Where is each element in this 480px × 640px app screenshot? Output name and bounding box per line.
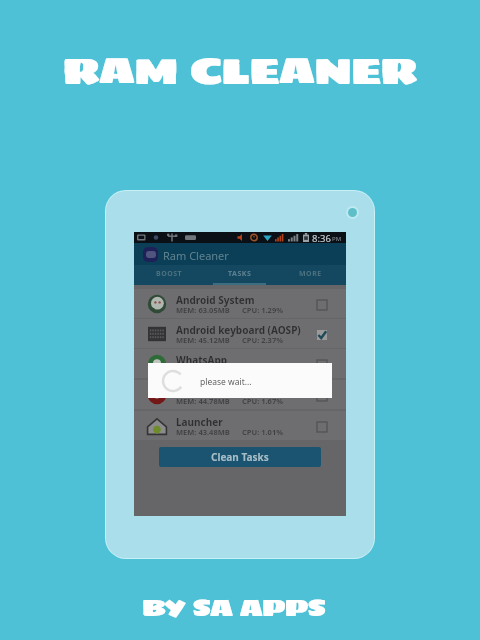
- staticText: MEM: 43.48MB: [176, 427, 230, 437]
- button[interactable]: Android System: [134, 289, 346, 318]
- staticText: CPU: 2.37%: [242, 335, 283, 345]
- button[interactable]: Android keyboard (AOSP): [134, 319, 346, 348]
- staticText: MEM: 63.05MB: [176, 305, 230, 315]
- staticText: 8:36: [312, 232, 331, 243]
- staticText: CPU: 1.67%: [242, 396, 283, 406]
- staticText: Ram Cleaner: [163, 248, 229, 263]
- staticText: Clean Tasks: [211, 450, 269, 464]
- staticText: CPU: 1.29%: [242, 305, 283, 315]
- button[interactable]: Select WhatsApp: [315, 358, 329, 372]
- staticText: Launcher: [176, 415, 223, 429]
- staticText: MEM: 44.78MB: [176, 396, 230, 406]
- staticText: PM: [332, 235, 342, 243]
- staticText: Android System: [176, 293, 255, 307]
- staticText: Android keyboard (AOSP): [176, 323, 301, 337]
- button[interactable]: Select Launcher: [315, 420, 329, 434]
- button[interactable]: Select Android keyboard (AOSP): [315, 328, 329, 342]
- staticText: TASKS: [228, 269, 252, 279]
- button[interactable]: Opera Mini: [134, 380, 346, 409]
- staticText: Opera Mini: [176, 384, 231, 398]
- staticText: MORE: [299, 269, 322, 279]
- button[interactable]: TASKS: [204, 265, 275, 285]
- button[interactable]: WhatsApp: [134, 349, 346, 378]
- staticText: RAM CLEANER: [63, 39, 418, 100]
- button[interactable]: Clean Tasks: [159, 447, 321, 467]
- staticText: BOOST: [156, 269, 183, 279]
- staticText: CPU: 1.01%: [242, 427, 283, 437]
- staticText: MEM: 34.22MB: [176, 365, 230, 375]
- staticText: WhatsApp: [176, 353, 228, 367]
- button[interactable]: Select Opera Mini: [315, 389, 329, 403]
- staticText: MEM: 45.12MB: [176, 335, 230, 345]
- button[interactable]: Launcher: [134, 411, 346, 440]
- staticText: please wait...: [200, 376, 252, 388]
- staticText: BY SA APPS: [142, 589, 326, 628]
- button[interactable]: BOOST: [134, 265, 204, 285]
- button[interactable]: MORE: [275, 265, 346, 285]
- button[interactable]: Select Android System: [315, 298, 329, 312]
